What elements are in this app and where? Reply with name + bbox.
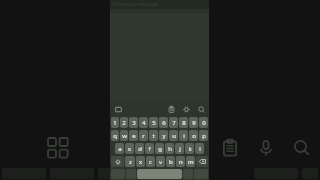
staticText: r: [142, 132, 145, 140]
button[interactable]: Apps grid: [44, 134, 72, 162]
staticText: 0: [202, 119, 206, 127]
button[interactable]: i: [179, 130, 188, 141]
staticText: v: [159, 158, 163, 166]
staticText: p: [202, 132, 206, 140]
staticText: z: [129, 158, 132, 166]
staticText: k: [188, 145, 192, 153]
button[interactable]: k: [185, 143, 194, 154]
staticText: j: [179, 145, 181, 153]
staticText: a: [118, 145, 122, 153]
button[interactable]: 7: [169, 117, 178, 128]
button[interactable]: v: [156, 156, 165, 167]
button[interactable]: 5: [149, 117, 158, 128]
button[interactable]: Shift: [111, 156, 124, 167]
staticText: 9: [192, 119, 196, 127]
staticText: u: [172, 132, 176, 140]
button[interactable]: Space: [137, 169, 182, 179]
button[interactable]: j: [175, 143, 184, 154]
staticText: e: [132, 132, 136, 140]
button[interactable]: 4: [139, 117, 148, 128]
staticText: m: [188, 158, 194, 166]
staticText: 7: [172, 119, 176, 127]
button[interactable]: d: [135, 143, 144, 154]
button[interactable]: Voice input: [252, 134, 280, 162]
button[interactable]: z: [125, 156, 135, 167]
button[interactable]: p: [199, 130, 208, 141]
button[interactable]: n: [176, 156, 185, 167]
staticText: l: [199, 145, 201, 153]
button[interactable]: 9: [189, 117, 198, 128]
button[interactable]: Clipboard: [216, 134, 244, 162]
button[interactable]: 8: [179, 117, 188, 128]
button[interactable]: y: [159, 130, 168, 141]
staticText: 5: [152, 119, 156, 127]
button[interactable]: w: [120, 130, 128, 141]
staticText: h: [168, 145, 172, 153]
staticText: 8: [182, 119, 186, 127]
button[interactable]: o: [189, 130, 198, 141]
staticText: 2: [122, 119, 126, 127]
button[interactable]: b: [166, 156, 175, 167]
staticText: 6: [162, 119, 166, 127]
button[interactable]: g: [155, 143, 164, 154]
button[interactable]: q: [111, 130, 119, 141]
button[interactable]: 0: [199, 117, 208, 128]
staticText: Compose message: [113, 1, 159, 8]
button[interactable]: 2: [120, 117, 128, 128]
button[interactable]: f: [145, 143, 154, 154]
button[interactable]: Backspace: [196, 156, 208, 167]
button[interactable]: s: [125, 143, 134, 154]
button[interactable]: 3: [129, 117, 138, 128]
staticText: g: [158, 145, 162, 153]
staticText: o: [192, 132, 196, 140]
staticText: 1: [113, 119, 117, 127]
staticText: i: [183, 132, 185, 140]
button[interactable]: 1: [111, 117, 119, 128]
staticText: c: [149, 158, 152, 166]
button[interactable]: c: [146, 156, 155, 167]
button[interactable]: r: [139, 130, 148, 141]
button[interactable]: Search: [197, 105, 205, 113]
button[interactable]: Settings: [182, 105, 190, 113]
button[interactable]: 6: [159, 117, 168, 128]
staticText: y: [162, 132, 166, 140]
button[interactable]: Search: [288, 134, 314, 160]
button[interactable]: l: [195, 143, 204, 154]
staticText: b: [169, 158, 173, 166]
button[interactable]: a: [115, 143, 124, 154]
button[interactable]: h: [165, 143, 174, 154]
staticText: n: [179, 158, 183, 166]
button[interactable]: x: [136, 156, 145, 167]
staticText: x: [139, 158, 143, 166]
button[interactable]: u: [169, 130, 178, 141]
staticText: s: [128, 145, 131, 153]
button[interactable]: [98, 168, 142, 179]
button[interactable]: Clipboard: [167, 105, 175, 113]
button[interactable]: m: [186, 156, 195, 167]
staticText: f: [148, 145, 151, 153]
button[interactable]: t: [149, 130, 158, 141]
staticText: w: [122, 132, 127, 140]
staticText: 4: [142, 119, 146, 127]
button[interactable]: Emoji: [114, 105, 122, 113]
button[interactable]: e: [129, 130, 138, 141]
staticText: d: [138, 145, 142, 153]
staticText: q: [113, 132, 117, 140]
staticText: 3: [132, 119, 136, 127]
staticText: t: [152, 132, 155, 140]
